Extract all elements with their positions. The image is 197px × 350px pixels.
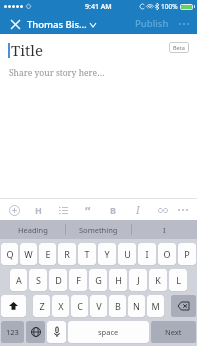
staticText: C <box>77 300 83 312</box>
staticText: G <box>95 274 102 286</box>
staticText: Something <box>79 225 118 235</box>
staticText: Y <box>104 248 110 260</box>
staticText: E <box>45 248 51 260</box>
button[interactable]: O <box>158 243 176 265</box>
staticText: Publish <box>135 17 169 30</box>
button[interactable]: Voice input <box>47 321 66 343</box>
staticText: H <box>35 204 42 216</box>
button[interactable]: F <box>69 269 87 291</box>
staticText: I <box>136 203 140 217</box>
staticText: L <box>176 274 181 286</box>
button[interactable]: I <box>138 243 156 265</box>
staticText: M <box>151 300 160 312</box>
staticText: Q <box>6 248 14 260</box>
button[interactable]: D <box>49 269 67 291</box>
button[interactable]: Thomas Bis… <box>27 18 96 31</box>
button[interactable]: Q <box>1 243 18 265</box>
button[interactable]: I <box>132 220 197 239</box>
staticText: N <box>133 300 140 312</box>
button[interactable]: P <box>178 243 196 265</box>
staticText: H <box>115 274 122 286</box>
staticText: Thomas Bis… <box>27 18 87 31</box>
button[interactable]: space <box>68 321 149 343</box>
button[interactable]: Something <box>66 220 131 239</box>
staticText: J <box>137 274 140 286</box>
button[interactable]: Beta <box>169 42 189 53</box>
staticText: O <box>163 248 171 260</box>
staticText: K <box>155 274 161 286</box>
button[interactable]: Heading <box>0 220 65 239</box>
button[interactable]: U <box>118 243 136 265</box>
button[interactable]: W <box>20 243 37 265</box>
button[interactable]: N <box>128 295 145 317</box>
button[interactable]: G <box>89 269 107 291</box>
staticText: W <box>24 248 33 260</box>
staticText: Next <box>165 327 182 337</box>
staticText: “ <box>85 203 91 217</box>
staticText: space <box>98 327 119 337</box>
button[interactable]: K <box>149 269 167 291</box>
button[interactable]: Close <box>7 16 23 32</box>
staticText: I <box>145 248 149 260</box>
staticText: S <box>36 274 41 286</box>
button[interactable]: J <box>129 269 147 291</box>
button[interactable]: A <box>10 269 27 291</box>
button[interactable]: Delete <box>171 295 196 317</box>
staticText: P <box>184 248 190 260</box>
staticText: Heading <box>18 225 48 235</box>
button[interactable]: More formatting <box>175 209 191 211</box>
staticText: 9:41 AM <box>85 2 112 12</box>
staticText: V <box>96 300 102 312</box>
button[interactable]: Z <box>33 295 50 317</box>
button[interactable]: L <box>169 269 187 291</box>
staticText: Share your story here… <box>9 67 105 79</box>
staticText: U <box>124 248 131 260</box>
staticText: X <box>58 300 64 312</box>
button[interactable]: C <box>71 295 88 317</box>
staticText: Title <box>11 40 43 60</box>
button[interactable]: “ <box>81 203 95 217</box>
staticText: Beta <box>173 44 185 51</box>
button[interactable]: V <box>90 295 107 317</box>
button[interactable]: M <box>147 295 164 317</box>
button[interactable]: 123 <box>1 321 24 343</box>
button[interactable]: Next <box>151 321 196 343</box>
button[interactable]: H <box>31 203 45 217</box>
button[interactable]: More options <box>177 23 191 25</box>
button[interactable]: B <box>109 295 126 317</box>
button[interactable]: Change keyboard <box>26 321 45 343</box>
button[interactable]: T <box>78 243 96 265</box>
button[interactable]: Italic <box>131 203 145 217</box>
staticText: 100% <box>161 2 178 11</box>
button[interactable]: Link <box>156 203 170 217</box>
staticText: D <box>55 274 62 286</box>
button[interactable]: X <box>52 295 69 317</box>
staticText: T <box>84 248 90 260</box>
button[interactable]: Publish <box>133 17 171 30</box>
staticText: B <box>115 300 121 312</box>
button[interactable]: B <box>106 203 120 217</box>
staticText: A <box>16 274 22 286</box>
button[interactable]: Insert <box>6 202 22 218</box>
button[interactable]: R <box>58 243 76 265</box>
staticText: 123 <box>6 327 19 337</box>
button[interactable]: Y <box>98 243 116 265</box>
staticText: I <box>163 225 166 235</box>
button[interactable]: List <box>56 203 70 217</box>
staticText: Z <box>39 300 45 312</box>
staticText: B <box>110 204 116 216</box>
staticText: R <box>64 248 70 260</box>
button[interactable]: H <box>109 269 127 291</box>
button[interactable]: E <box>39 243 56 265</box>
button[interactable]: S <box>29 269 47 291</box>
staticText: F <box>76 274 81 286</box>
button[interactable]: Shift <box>1 295 26 317</box>
